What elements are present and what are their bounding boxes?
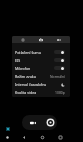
button[interactable]: Recent apps xyxy=(51,132,69,142)
button[interactable]: Mikrofon xyxy=(12,64,70,72)
button[interactable]: Video mode xyxy=(52,36,66,43)
staticText: Kvalita videa xyxy=(15,90,37,95)
button[interactable]: Gallery xyxy=(4,125,12,133)
button[interactable]: Photo mode xyxy=(34,36,48,43)
button[interactable]: Rotate screen xyxy=(2,132,12,142)
button[interactable]: Kvalita videa xyxy=(12,88,70,96)
button[interactable]: Settings xyxy=(16,36,30,43)
staticText: Mikrofon xyxy=(15,66,31,71)
button[interactable]: Back xyxy=(15,132,33,142)
staticText: EIS xyxy=(15,58,21,63)
staticText: Normální xyxy=(50,74,65,79)
staticText: Potlačení šumu xyxy=(15,50,41,55)
button[interactable]: EIS xyxy=(12,56,70,64)
staticText: Režim zvuku xyxy=(15,74,37,79)
button[interactable]: Take photo xyxy=(44,115,57,130)
button[interactable]: Home xyxy=(33,132,51,142)
staticText: 1080p xyxy=(55,90,65,95)
button[interactable]: Interval časosběru xyxy=(12,80,70,88)
button[interactable]: Potlačení šumu xyxy=(12,48,70,56)
button[interactable]: Record video xyxy=(27,115,39,130)
staticText: Interval časosběru xyxy=(15,82,47,87)
button[interactable]: Režim zvuku xyxy=(12,72,70,80)
